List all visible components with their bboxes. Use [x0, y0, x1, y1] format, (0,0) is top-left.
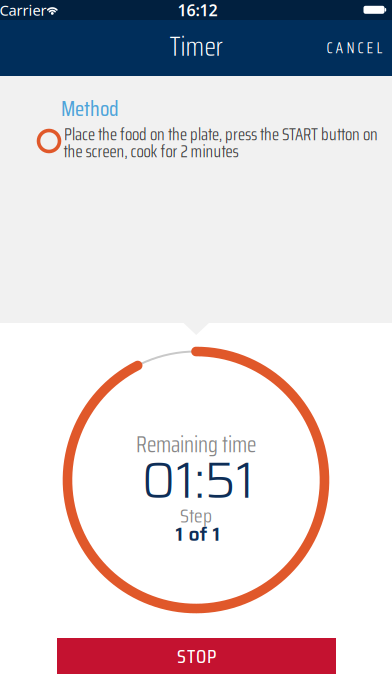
staticText: Method [61, 92, 119, 125]
button[interactable]: S T O P [57, 638, 336, 674]
staticText: 16:12 [177, 0, 217, 21]
staticText: C A N C E L [326, 36, 382, 60]
staticText: Step [180, 500, 212, 531]
staticText: Remaining time [136, 427, 256, 462]
staticText: Carrier [0, 0, 46, 20]
staticText: 01:51 [141, 440, 254, 520]
button[interactable]: C A N C E L [319, 28, 389, 68]
staticText: Timer [169, 25, 222, 67]
staticText: S T O P [177, 640, 216, 672]
staticText: the screen, cook for 2 minutes [63, 138, 238, 165]
staticText: Place the food on the plate, press the S… [64, 121, 378, 148]
staticText: 1 of 1 [175, 519, 220, 549]
